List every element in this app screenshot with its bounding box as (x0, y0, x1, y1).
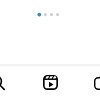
button[interactable]: Reels (43, 75, 58, 90)
button[interactable]: Search (0, 72, 8, 92)
button[interactable]: Shop (94, 75, 100, 90)
